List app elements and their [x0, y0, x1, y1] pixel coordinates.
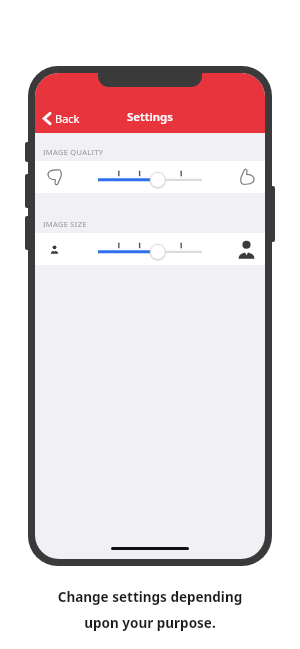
button[interactable]: Largest size — [237, 240, 256, 259]
staticText: upon your purpose. — [16, 614, 284, 632]
button[interactable]: Back — [35, 105, 78, 131]
staticText: Change settings depending — [16, 588, 284, 606]
button[interactable]: Lowest quality — [46, 168, 64, 186]
staticText: IMAGE QUALITY — [43, 147, 104, 157]
button[interactable]: Adjust value — [94, 163, 206, 191]
staticText: IMAGE SIZE — [43, 219, 87, 229]
button[interactable]: Smallest size — [46, 241, 63, 258]
button[interactable]: Adjust value — [94, 235, 206, 263]
button[interactable]: Highest quality — [238, 168, 256, 186]
staticText: Settings — [127, 109, 173, 125]
staticText: Back — [55, 111, 80, 126]
